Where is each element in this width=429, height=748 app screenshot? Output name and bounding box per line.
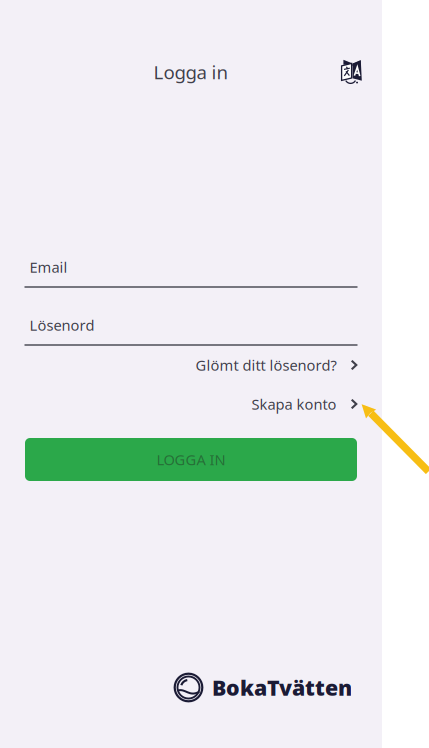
staticText: BokaTvätten: [212, 673, 352, 702]
button[interactable]: Glömt ditt lösenord?: [24, 354, 357, 376]
button[interactable]: Skapa konto: [24, 393, 357, 415]
staticText: Lösenord: [29, 315, 94, 335]
button[interactable]: Change language: [341, 59, 363, 85]
staticText: LOGGA IN: [156, 450, 225, 469]
button[interactable]: LOGGA IN: [25, 438, 357, 481]
staticText: Glömt ditt lösenord?: [195, 355, 336, 375]
staticText: Skapa konto: [251, 394, 336, 414]
staticText: Logga in: [153, 60, 228, 84]
staticText: Email: [29, 257, 67, 277]
